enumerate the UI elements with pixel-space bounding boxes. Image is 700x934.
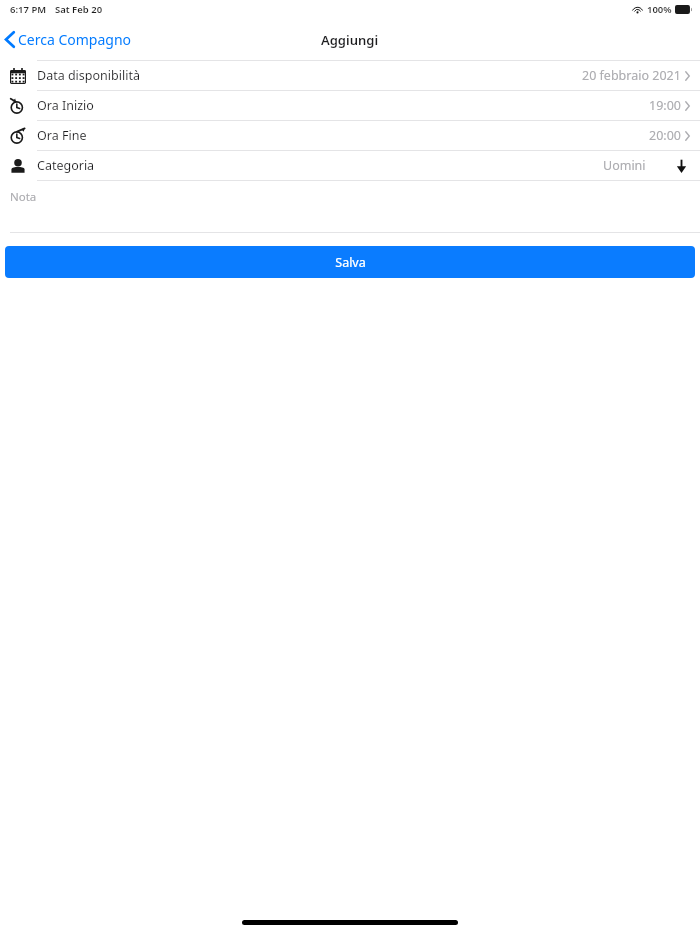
- staticText: Data disponibilità: [37, 67, 140, 84]
- staticText: Sat Feb 20: [55, 3, 103, 16]
- staticText: Categoria: [37, 157, 95, 174]
- button[interactable]: Ora Inizio: [0, 91, 700, 120]
- button[interactable]: Nota: [0, 181, 700, 232]
- button[interactable]: Salva: [5, 246, 695, 278]
- staticText: 6:17 PM: [10, 3, 47, 16]
- staticText: 20 febbraio 2021: [582, 67, 681, 84]
- button[interactable]: Espandi categoria: [672, 157, 690, 175]
- staticText: Ora Inizio: [37, 97, 94, 114]
- staticText: Salva: [335, 254, 366, 271]
- staticText: 19:00: [649, 97, 681, 114]
- staticText: Cerca Compagno: [18, 30, 132, 49]
- button[interactable]: Ora Fine: [0, 121, 700, 150]
- button[interactable]: Cerca Compagno: [0, 26, 140, 53]
- staticText: 100%: [647, 3, 672, 16]
- button[interactable]: Data disponibilità: [0, 61, 700, 90]
- staticText: 20:00: [649, 127, 681, 144]
- staticText: Aggiungi: [321, 31, 379, 49]
- button[interactable]: Categoria: [0, 151, 700, 180]
- staticText: Nota: [10, 189, 37, 205]
- staticText: Ora Fine: [37, 127, 87, 144]
- staticText: Uomini: [603, 157, 646, 174]
